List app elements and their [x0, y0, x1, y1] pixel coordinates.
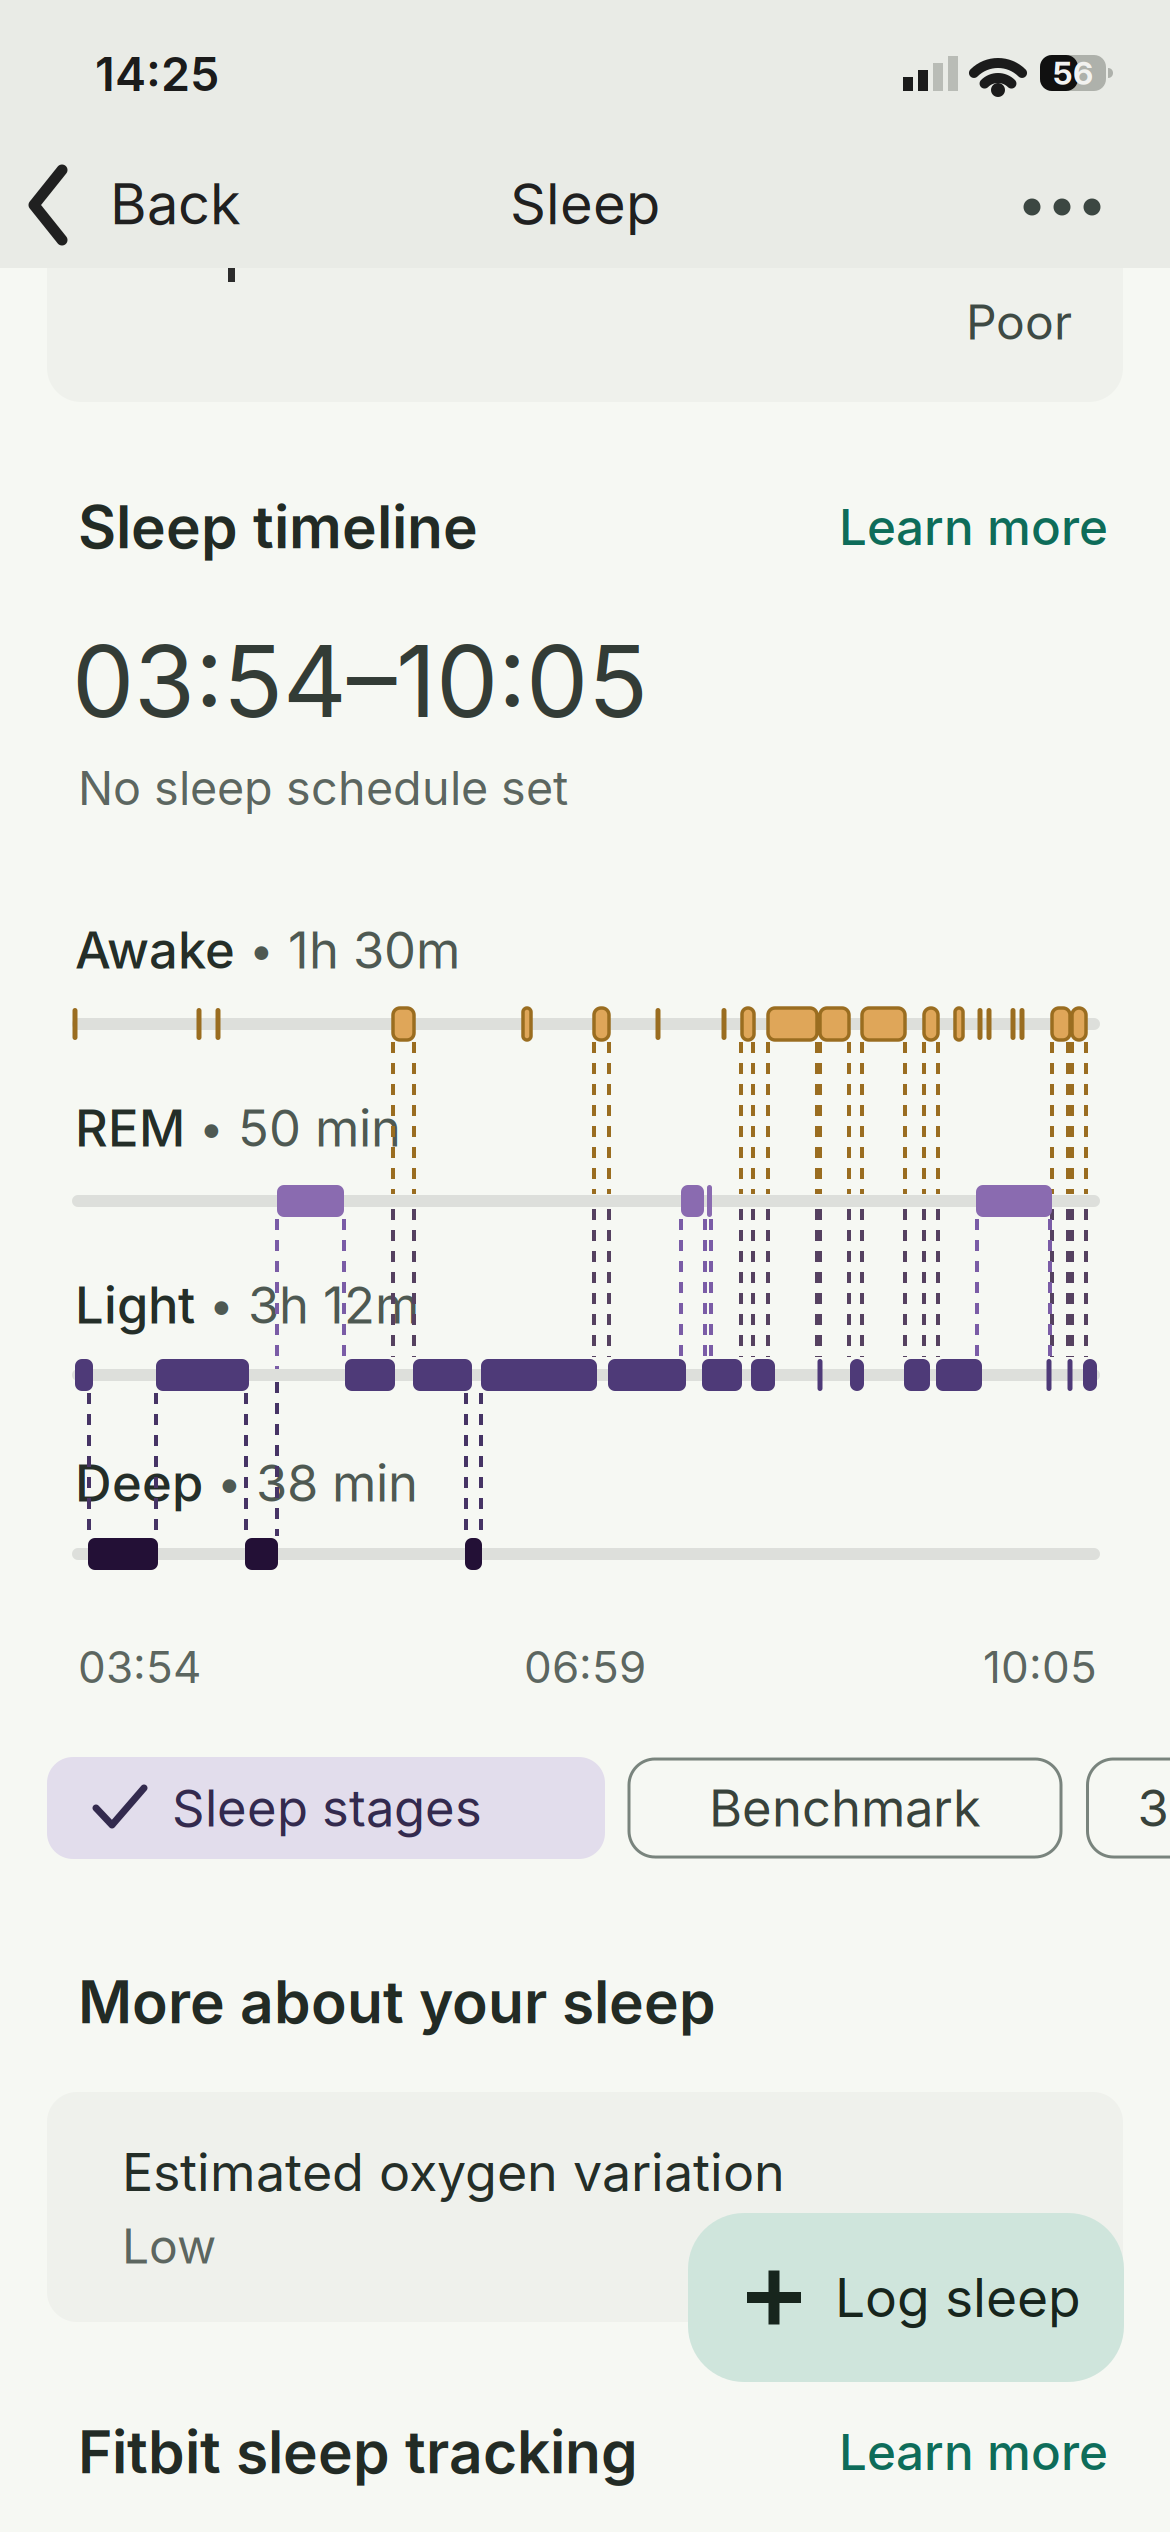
button[interactable]: Estimated oxygen variation	[47, 2092, 1123, 2322]
staticText: 3	[1137, 1778, 1168, 1838]
staticText: •	[209, 1279, 234, 1331]
staticText: 1h 30m	[288, 920, 460, 980]
staticText: Log sleep	[835, 2266, 1081, 2329]
staticText: •	[217, 1457, 242, 1509]
button[interactable]: Benchmark	[627, 1757, 1063, 1859]
staticText: 06:59	[524, 1641, 646, 1693]
staticText: Low	[122, 2218, 216, 2274]
staticText: Back	[110, 171, 241, 237]
staticText: REM	[75, 1098, 185, 1158]
staticText: Sleep stages	[172, 1778, 482, 1838]
staticText: •	[199, 1102, 224, 1154]
staticText: 3h 12m	[248, 1275, 419, 1335]
staticText: Benchmark	[709, 1778, 981, 1838]
staticText: Awake	[75, 920, 235, 980]
staticText: Poor	[966, 294, 1072, 350]
staticText: 50 min	[238, 1098, 401, 1158]
staticText: Estimated oxygen variation	[122, 2141, 785, 2203]
staticText: Sleep	[510, 171, 660, 237]
button[interactable]: Log sleep	[688, 2213, 1124, 2382]
staticText: 03:54–10:05	[72, 623, 648, 739]
button[interactable]: More options	[992, 157, 1132, 257]
button[interactable]: Learn more	[808, 2407, 1108, 2497]
staticText: 10:05	[983, 1641, 1097, 1693]
staticText: Sleep timeline	[78, 492, 478, 562]
staticText: Light	[75, 1275, 195, 1335]
staticText: Learn more	[839, 2423, 1108, 2481]
button[interactable]: Back	[20, 150, 250, 260]
staticText: Learn more	[839, 498, 1108, 556]
button[interactable]: 3	[1085, 1757, 1170, 1859]
staticText: •	[249, 924, 274, 976]
staticText: 38 min	[256, 1453, 418, 1513]
staticText: Fitbit sleep tracking	[78, 2417, 638, 2487]
staticText: 14:25	[95, 46, 219, 102]
staticText: Deep	[75, 1453, 203, 1513]
staticText: More about your sleep	[78, 1967, 716, 2037]
button[interactable]: Learn more	[808, 482, 1108, 572]
staticText: 56	[1053, 54, 1093, 92]
staticText: No sleep schedule set	[78, 760, 568, 816]
button[interactable]: Sleep stages	[47, 1757, 605, 1859]
staticText: 03:54	[78, 1641, 201, 1693]
